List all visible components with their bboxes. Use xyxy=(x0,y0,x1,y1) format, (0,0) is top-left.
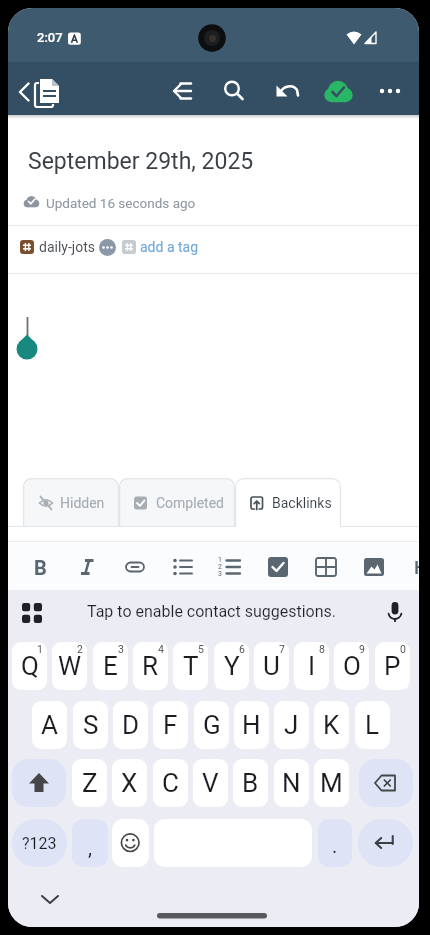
button[interactable]: Z xyxy=(72,759,107,807)
staticText: G xyxy=(203,710,221,740)
staticText: 5 xyxy=(198,643,204,655)
button[interactable]: I xyxy=(294,642,329,690)
staticText: daily-jots xyxy=(39,239,95,255)
button[interactable]: M xyxy=(314,759,349,807)
staticText: add a tag xyxy=(140,239,199,255)
staticText: S xyxy=(83,710,99,740)
button[interactable]: ?123 xyxy=(12,819,67,867)
staticText: E xyxy=(103,651,118,681)
button[interactable]: H xyxy=(403,549,419,585)
button[interactable]: C xyxy=(153,759,188,807)
staticText: U xyxy=(263,651,280,681)
button[interactable]: . xyxy=(318,819,352,867)
button[interactable] xyxy=(12,759,66,807)
button[interactable]: N xyxy=(274,759,309,807)
staticText: 2 xyxy=(77,643,83,655)
button[interactable]: L xyxy=(355,701,390,749)
staticText: 0 xyxy=(400,643,406,655)
staticText: September 29th, 2025 xyxy=(28,148,254,175)
button[interactable]: D xyxy=(113,701,148,749)
button[interactable]: R xyxy=(133,642,168,690)
staticText: ?123 xyxy=(22,834,57,853)
button[interactable] xyxy=(376,594,414,632)
staticText: Z xyxy=(82,768,98,798)
staticText: C xyxy=(162,768,179,798)
button[interactable]: O xyxy=(334,642,369,690)
button[interactable] xyxy=(34,884,66,910)
button[interactable] xyxy=(117,549,153,585)
button[interactable]: U xyxy=(254,642,289,690)
button[interactable] xyxy=(371,71,411,111)
button[interactable] xyxy=(8,62,70,115)
button[interactable]: E xyxy=(93,642,128,690)
button[interactable]: Q xyxy=(12,642,47,690)
button[interactable]: F xyxy=(153,701,188,749)
button[interactable] xyxy=(308,549,344,585)
button[interactable]: Y xyxy=(214,642,249,690)
staticText: X xyxy=(121,768,138,798)
button[interactable]: P xyxy=(375,642,410,690)
staticText: M xyxy=(320,768,343,798)
button[interactable]: V xyxy=(193,759,228,807)
staticText: A xyxy=(41,710,58,740)
button[interactable] xyxy=(120,236,210,262)
button[interactable]: S xyxy=(73,701,108,749)
button[interactable]: B xyxy=(22,549,58,585)
button[interactable] xyxy=(147,905,277,925)
button[interactable]: T xyxy=(173,642,208,690)
button[interactable] xyxy=(18,236,118,262)
button[interactable] xyxy=(163,71,203,111)
staticText: B xyxy=(242,768,259,798)
button[interactable]: Backlinks xyxy=(235,478,341,527)
staticText: Backlinks xyxy=(272,495,332,511)
button[interactable] xyxy=(359,759,413,807)
button[interactable] xyxy=(215,71,255,111)
button[interactable] xyxy=(319,71,359,111)
staticText: 9 xyxy=(359,643,365,655)
staticText: 3 xyxy=(118,643,124,655)
button[interactable]: Hidden xyxy=(23,478,119,527)
button[interactable] xyxy=(260,549,296,585)
staticText: T xyxy=(183,651,199,681)
button[interactable]: , xyxy=(72,819,108,867)
button[interactable] xyxy=(355,549,391,585)
staticText: F xyxy=(163,710,178,740)
button[interactable]: G xyxy=(194,701,229,749)
staticText: O xyxy=(343,651,361,681)
button[interactable]: H xyxy=(234,701,269,749)
staticText: , xyxy=(88,836,92,859)
button[interactable] xyxy=(165,549,201,585)
staticText: I xyxy=(308,651,316,681)
staticText: W xyxy=(58,651,82,681)
staticText: 1 xyxy=(218,556,222,564)
button[interactable] xyxy=(112,819,149,867)
button[interactable]: K xyxy=(314,701,349,749)
staticText: Y xyxy=(224,651,240,681)
staticText: 2 xyxy=(218,563,222,571)
staticText: V xyxy=(202,768,219,798)
staticText: 7 xyxy=(279,643,285,655)
button[interactable]: Completed xyxy=(119,478,235,527)
button[interactable] xyxy=(358,819,413,867)
button[interactable]: B xyxy=(233,759,268,807)
button[interactable] xyxy=(212,549,248,585)
staticText: J xyxy=(284,710,299,740)
button[interactable] xyxy=(267,71,307,111)
staticText: . xyxy=(332,834,338,857)
button[interactable]: A xyxy=(32,701,67,749)
staticText: L xyxy=(365,710,380,740)
button[interactable] xyxy=(70,549,106,585)
staticText: D xyxy=(122,710,140,740)
button[interactable]: J xyxy=(274,701,309,749)
staticText: 6 xyxy=(239,643,245,655)
button[interactable]: X xyxy=(112,759,147,807)
staticText: H xyxy=(242,710,261,740)
button[interactable]: W xyxy=(52,642,87,690)
staticText: 1 xyxy=(37,643,43,655)
staticText: R xyxy=(142,651,159,681)
staticText: N xyxy=(282,768,301,798)
staticText: Tap to enable contact suggestions. xyxy=(87,602,337,621)
button[interactable] xyxy=(12,594,50,632)
staticText: H xyxy=(414,556,419,578)
